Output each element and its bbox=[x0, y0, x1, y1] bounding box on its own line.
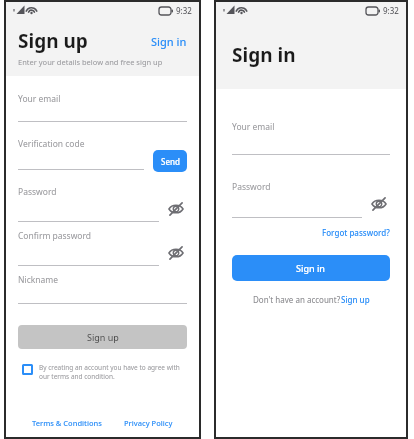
staticText: Your email bbox=[18, 93, 61, 105]
staticText: 9:32 bbox=[383, 5, 399, 16]
button[interactable]: Forgot password? bbox=[322, 227, 390, 238]
staticText: Privacy Policy bbox=[124, 418, 173, 428]
button[interactable]: Send bbox=[153, 150, 187, 172]
staticText: Confirm password bbox=[18, 230, 92, 242]
button[interactable]: Privacy Policy bbox=[124, 418, 173, 428]
button[interactable]: Toggle password visibility bbox=[165, 198, 187, 220]
staticText: Sign up bbox=[87, 331, 119, 343]
button[interactable]: Sign in bbox=[232, 255, 390, 281]
button[interactable]: Sign in bbox=[149, 32, 189, 51]
staticText: Send bbox=[161, 156, 180, 167]
staticText: Sign up bbox=[341, 294, 370, 305]
staticText: Enter your details below and free sign u… bbox=[18, 57, 163, 67]
staticText: Password bbox=[232, 181, 271, 193]
button[interactable]: By creating an account you have to agree… bbox=[18, 363, 187, 381]
staticText: Sign in bbox=[232, 42, 296, 68]
staticText: 9:32 bbox=[176, 5, 192, 16]
staticText: Terms & Conditions bbox=[32, 418, 102, 428]
staticText: Password bbox=[18, 186, 57, 198]
staticText: Forgot password? bbox=[322, 227, 390, 238]
button[interactable]: Toggle password visibility bbox=[368, 193, 390, 215]
button[interactable]: Sign up bbox=[18, 325, 187, 349]
button[interactable]: Sign up bbox=[341, 294, 370, 305]
button[interactable]: Terms & Conditions bbox=[32, 418, 102, 428]
staticText: Sign in bbox=[151, 34, 187, 49]
button[interactable]: Toggle password visibility bbox=[165, 242, 187, 264]
staticText: Sign up bbox=[18, 28, 88, 54]
staticText: Don't have an account? bbox=[253, 294, 341, 305]
staticText: Sign in bbox=[296, 262, 326, 274]
staticText: Verification code bbox=[18, 138, 85, 150]
staticText: Your email bbox=[232, 121, 275, 133]
staticText: By creating an account you have to agree… bbox=[39, 363, 187, 381]
staticText: Nickname bbox=[18, 274, 59, 286]
